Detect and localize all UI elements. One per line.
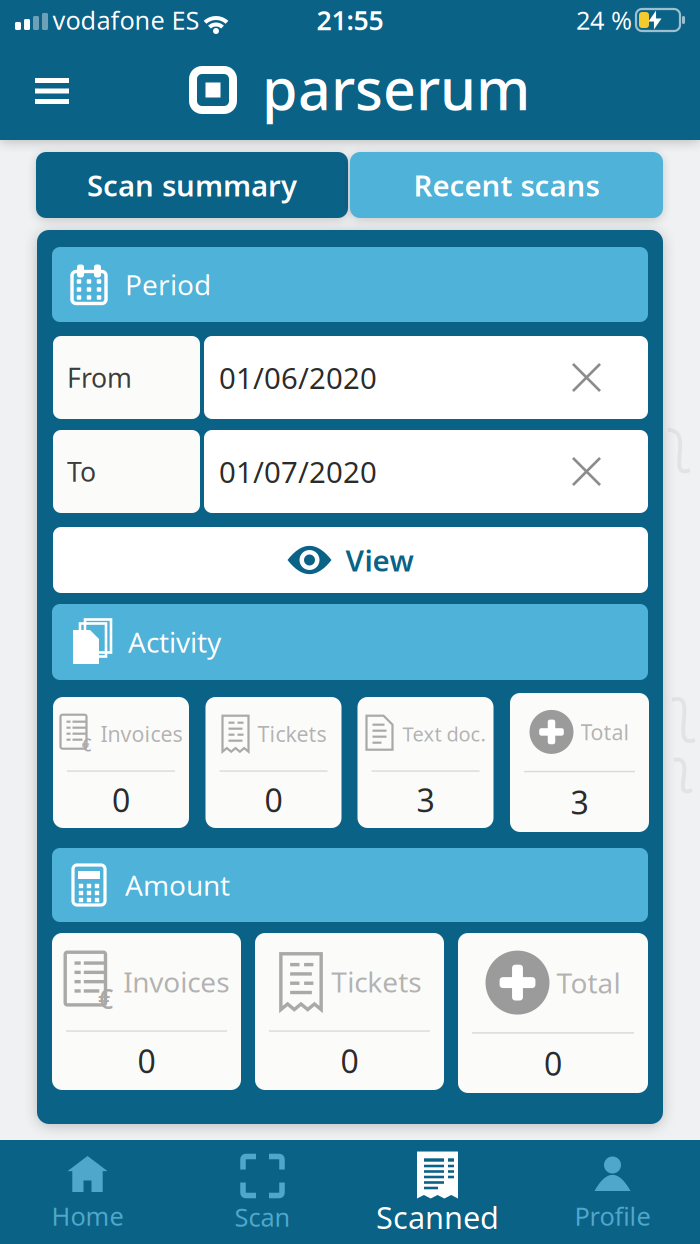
staticText: Period: [125, 266, 211, 303]
staticText: 0: [264, 779, 282, 821]
staticText: Profile: [574, 1199, 650, 1233]
staticText: Total: [580, 718, 629, 746]
staticText: 24 %: [576, 3, 632, 37]
button[interactable]: View: [53, 527, 648, 593]
staticText: 3: [570, 781, 588, 823]
staticText: 01/06/2020: [219, 358, 377, 397]
button[interactable]: Menu: [30, 72, 74, 110]
staticText: Scan summary: [87, 165, 297, 204]
staticText: Text doc.: [402, 720, 485, 747]
staticText: Tickets: [331, 963, 421, 1000]
staticText: parserum: [262, 50, 530, 126]
button[interactable]: Scan: [202, 1142, 322, 1242]
staticText: Invoices: [100, 719, 182, 748]
button[interactable]: Recent scans: [350, 152, 663, 218]
staticText: 0: [112, 779, 130, 821]
staticText: Activity: [128, 623, 221, 661]
staticText: 0: [137, 1040, 155, 1082]
staticText: From: [67, 360, 132, 395]
staticText: vodafone ES: [52, 3, 199, 37]
staticText: Scanned: [376, 1197, 499, 1237]
staticText: 0: [544, 1042, 562, 1085]
staticText: €: [98, 981, 113, 1016]
staticText: 0: [340, 1040, 358, 1082]
button[interactable]: To date: [204, 430, 648, 513]
staticText: Invoices: [123, 963, 229, 1000]
staticText: €: [81, 733, 91, 756]
staticText: Amount: [125, 866, 230, 904]
staticText: View: [345, 540, 413, 579]
staticText: 21:55: [316, 2, 383, 38]
button[interactable]: Scanned: [350, 1142, 525, 1242]
button[interactable]: Scan summary: [36, 152, 348, 218]
staticText: Total: [556, 964, 620, 1001]
staticText: Home: [51, 1199, 123, 1233]
staticText: 3: [416, 779, 434, 821]
staticText: Tickets: [257, 719, 326, 748]
staticText: Scan: [234, 1200, 290, 1234]
staticText: 01/07/2020: [219, 452, 377, 491]
staticText: Recent scans: [413, 165, 599, 204]
button[interactable]: Profile: [552, 1142, 672, 1242]
button[interactable]: Home: [27, 1142, 147, 1242]
button[interactable]: From date: [204, 336, 648, 419]
staticText: To: [67, 454, 96, 489]
